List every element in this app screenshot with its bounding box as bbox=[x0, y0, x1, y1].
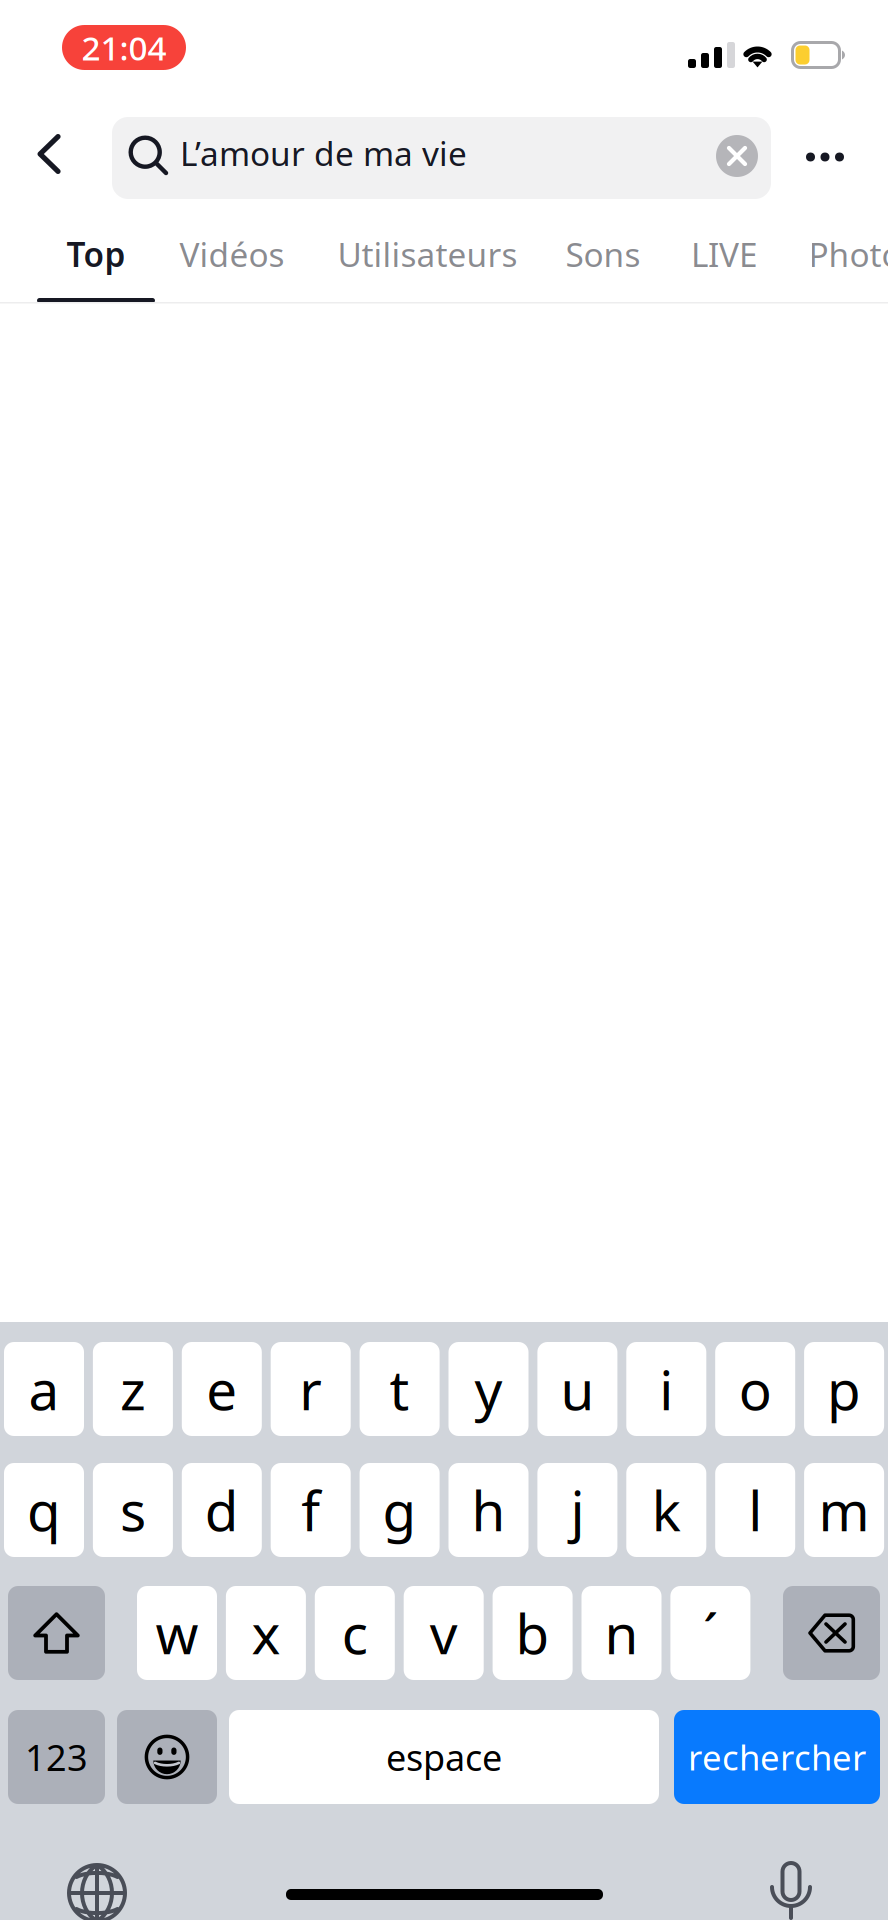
button[interactable]: e bbox=[182, 1342, 262, 1436]
button[interactable]: espace bbox=[229, 1710, 659, 1804]
staticText: v bbox=[430, 1597, 458, 1669]
staticText: z bbox=[120, 1353, 146, 1425]
staticText: o bbox=[739, 1353, 772, 1425]
button[interactable]: d bbox=[182, 1463, 262, 1557]
staticText: s bbox=[120, 1474, 146, 1546]
button[interactable]: Sons bbox=[540, 214, 666, 294]
button[interactable]: Top bbox=[37, 214, 155, 294]
button[interactable]: a bbox=[4, 1342, 84, 1436]
button[interactable]: LIVE bbox=[668, 214, 781, 294]
button[interactable]: q bbox=[4, 1463, 84, 1557]
button[interactable]: g bbox=[360, 1463, 440, 1557]
staticText: y bbox=[474, 1353, 502, 1425]
staticText: 123 bbox=[25, 1733, 88, 1781]
staticText: q bbox=[27, 1474, 61, 1546]
button[interactable]: u bbox=[537, 1342, 617, 1436]
button[interactable]: w bbox=[137, 1586, 217, 1680]
staticText: espace bbox=[386, 1733, 502, 1781]
staticText: g bbox=[383, 1474, 417, 1546]
staticText: l bbox=[748, 1474, 762, 1546]
button[interactable]: o bbox=[715, 1342, 795, 1436]
staticText: Vidéos bbox=[179, 232, 284, 276]
button[interactable]: Dictate bbox=[770, 1859, 812, 1919]
button[interactable]: Photos bbox=[784, 214, 888, 294]
button[interactable]: 123 bbox=[8, 1710, 105, 1804]
button[interactable]: t bbox=[360, 1342, 440, 1436]
button[interactable]: Shift bbox=[8, 1586, 105, 1680]
staticText: Photos bbox=[808, 232, 888, 276]
button[interactable]: Utilisateurs bbox=[314, 214, 541, 294]
button[interactable]: Next keyboard bbox=[67, 1863, 127, 1920]
staticText: a bbox=[28, 1353, 59, 1425]
button[interactable]: rechercher bbox=[674, 1710, 880, 1804]
staticText: L’amour de ma vie bbox=[180, 131, 467, 175]
staticText: Utilisateurs bbox=[337, 232, 517, 276]
button[interactable]: More options bbox=[782, 113, 868, 201]
staticText: ´ bbox=[703, 1597, 718, 1669]
staticText: r bbox=[299, 1353, 322, 1425]
button[interactable]: s bbox=[93, 1463, 173, 1557]
button[interactable]: h bbox=[448, 1463, 528, 1557]
button[interactable]: c bbox=[315, 1586, 395, 1680]
staticText: f bbox=[301, 1474, 320, 1546]
button[interactable]: Emoji bbox=[117, 1710, 217, 1804]
button[interactable]: Delete bbox=[783, 1586, 880, 1680]
button[interactable]: f bbox=[271, 1463, 351, 1557]
button[interactable]: Back bbox=[11, 110, 87, 198]
button[interactable]: z bbox=[93, 1342, 173, 1436]
staticText: x bbox=[251, 1597, 280, 1669]
staticText: h bbox=[471, 1474, 505, 1546]
button[interactable]: n bbox=[581, 1586, 661, 1680]
button[interactable]: L’amour de ma vie bbox=[112, 117, 771, 199]
staticText: d bbox=[205, 1474, 239, 1546]
staticText: LIVE bbox=[691, 232, 758, 276]
button[interactable]: j bbox=[537, 1463, 617, 1557]
button[interactable]: i bbox=[626, 1342, 706, 1436]
button[interactable]: b bbox=[493, 1586, 573, 1680]
button[interactable]: y bbox=[448, 1342, 528, 1436]
staticText: t bbox=[390, 1353, 410, 1425]
staticText: Sons bbox=[565, 232, 640, 276]
staticText: w bbox=[155, 1597, 198, 1669]
staticText: 21:04 bbox=[81, 25, 166, 70]
button[interactable]: Vidéos bbox=[153, 214, 311, 294]
button[interactable]: ´ bbox=[670, 1586, 750, 1680]
button[interactable]: v bbox=[404, 1586, 484, 1680]
staticText: n bbox=[604, 1597, 638, 1669]
button[interactable]: x bbox=[226, 1586, 306, 1680]
button[interactable]: m bbox=[804, 1463, 884, 1557]
staticText: k bbox=[652, 1474, 681, 1546]
staticText: u bbox=[560, 1353, 594, 1425]
staticText: e bbox=[206, 1353, 237, 1425]
staticText: j bbox=[570, 1474, 584, 1546]
staticText: m bbox=[819, 1474, 870, 1546]
staticText: i bbox=[659, 1353, 673, 1425]
staticText: c bbox=[342, 1597, 368, 1669]
staticText: b bbox=[516, 1597, 550, 1669]
staticText: Top bbox=[66, 232, 125, 276]
button[interactable]: k bbox=[626, 1463, 706, 1557]
button[interactable]: l bbox=[715, 1463, 795, 1557]
button[interactable]: r bbox=[271, 1342, 351, 1436]
staticText: p bbox=[827, 1353, 861, 1425]
staticText: rechercher bbox=[688, 1734, 866, 1780]
button[interactable]: p bbox=[804, 1342, 884, 1436]
